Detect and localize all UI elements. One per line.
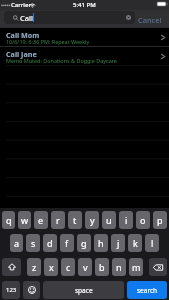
button[interactable]: p	[153, 211, 167, 229]
staticText: 10/6/19, 6:36 PM: Repeat Weekly	[6, 38, 90, 45]
staticText: u	[106, 214, 112, 226]
button[interactable]: h	[94, 234, 108, 252]
button[interactable]: t	[68, 211, 82, 229]
button[interactable]: n	[112, 258, 126, 276]
staticText: d	[47, 237, 53, 249]
staticText: l	[151, 237, 154, 249]
staticText: z	[32, 261, 37, 273]
staticText: r	[56, 214, 60, 226]
button[interactable]: d	[43, 234, 57, 252]
button[interactable]: m	[129, 258, 143, 276]
other: Emoji keyboard	[28, 286, 36, 294]
staticText: b	[99, 261, 105, 273]
button[interactable]: j	[111, 234, 125, 252]
button[interactable]: Clear text	[126, 15, 131, 20]
other: Backspace	[153, 264, 163, 271]
button[interactable]: o	[136, 211, 150, 229]
button[interactable]: x	[44, 258, 58, 276]
staticText: x	[49, 261, 54, 273]
staticText: Call Mom	[6, 30, 40, 40]
staticText: n	[116, 261, 122, 273]
staticText: w	[21, 214, 29, 226]
other: Shift	[8, 263, 16, 271]
button[interactable]: r	[51, 211, 65, 229]
button[interactable]: Backspace	[149, 258, 167, 276]
button[interactable]: Call Mom	[0, 28, 169, 46]
button[interactable]: g	[77, 234, 91, 252]
staticText: c	[66, 261, 71, 273]
button[interactable]: b	[95, 258, 109, 276]
button[interactable]: search	[127, 281, 167, 299]
staticText: m	[132, 261, 141, 273]
button[interactable]: y	[85, 211, 99, 229]
button[interactable]: c	[61, 258, 75, 276]
staticText: g	[81, 237, 87, 249]
button[interactable]: k	[128, 234, 142, 252]
staticText: 5:41 PM	[73, 1, 96, 9]
button[interactable]: Call Jane	[0, 47, 169, 65]
staticText: h	[98, 237, 104, 249]
staticText: Memo Muted: Donations & Doggie Daycare	[6, 57, 117, 64]
staticText: p	[157, 214, 163, 226]
button[interactable]: v	[78, 258, 92, 276]
staticText: q	[6, 214, 12, 226]
staticText: y	[90, 214, 95, 226]
button[interactable]: Cancel	[138, 13, 162, 26]
button[interactable]: 123	[2, 281, 20, 299]
button[interactable]: e	[34, 211, 48, 229]
staticText: a	[14, 237, 20, 249]
staticText: j	[117, 237, 120, 249]
button[interactable]: f	[60, 234, 74, 252]
button[interactable]: Shift	[2, 258, 21, 276]
button[interactable]: z	[27, 258, 41, 276]
button[interactable]: q	[2, 211, 15, 229]
button[interactable]: space	[43, 281, 124, 299]
staticText: e	[38, 214, 44, 226]
button[interactable]: s	[26, 234, 40, 252]
button[interactable]: Call	[4, 11, 135, 24]
button[interactable]: a	[10, 234, 23, 252]
button[interactable]: Emoji keyboard	[23, 281, 40, 299]
staticText: t	[73, 214, 77, 226]
staticText: Cancel	[138, 15, 162, 25]
button[interactable]: u	[102, 211, 116, 229]
button[interactable]: l	[145, 234, 159, 252]
staticText: o	[140, 214, 146, 226]
staticText: s	[31, 237, 36, 249]
staticText: k	[133, 237, 138, 249]
staticText: Call Jane	[6, 49, 37, 59]
button[interactable]: i	[119, 211, 133, 229]
staticText: space	[75, 286, 93, 295]
staticText: Carrier	[11, 1, 31, 9]
staticText: Call	[20, 13, 33, 23]
staticText: i	[125, 214, 128, 226]
button[interactable]: w	[18, 211, 31, 229]
staticText: f	[65, 237, 69, 249]
staticText: v	[83, 261, 88, 273]
staticText: search	[137, 286, 158, 295]
staticText: 123	[6, 286, 17, 294]
